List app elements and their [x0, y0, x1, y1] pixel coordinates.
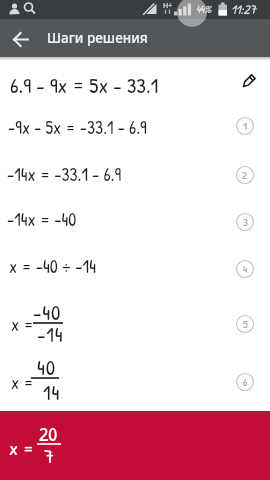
staticText: -14x = -40 — [7, 207, 77, 231]
staticText: 44% — [196, 2, 212, 17]
staticText: H+ — [163, 1, 173, 11]
staticText: -40 — [33, 298, 62, 322]
staticText: x = -40 ÷ -14 — [9, 254, 96, 278]
staticText: x = — [11, 370, 34, 394]
button[interactable] — [6, 24, 36, 54]
staticText: x = — [11, 312, 34, 336]
staticText: 40 — [37, 353, 56, 377]
staticText: 6.9 - 9x = 5x - 33.1 — [10, 71, 159, 95]
staticText: 7 — [44, 442, 54, 466]
staticText: 6 — [243, 375, 248, 390]
staticText: -14x = -33.1 - 6.9 — [7, 162, 122, 186]
button[interactable]: -9x - 5x = -33.1 - 6.9 — [0, 105, 270, 151]
staticText: 1 — [243, 119, 247, 134]
button[interactable]: -14x = -33.1 - 6.9 — [0, 151, 270, 198]
staticText: 11:27 — [231, 0, 256, 18]
staticText: x = — [9, 434, 34, 458]
button[interactable]: -14x = -40 — [0, 198, 270, 245]
staticText: 20 — [39, 420, 58, 444]
button[interactable]: x = — [0, 293, 270, 352]
staticText: -9x - 5x = -33.1 - 6.9 — [8, 115, 147, 139]
button[interactable]: 6.9 - 9x = 5x - 33.1 — [0, 57, 270, 105]
staticText: Шаги решения — [47, 29, 148, 47]
staticText: 4 — [243, 262, 248, 277]
staticText: -14 — [37, 320, 64, 344]
staticText: 14 — [43, 378, 61, 402]
button[interactable]: x = — [0, 352, 270, 411]
staticText: 5 — [243, 317, 248, 332]
button[interactable]: x = — [0, 411, 270, 480]
button[interactable]: x = -40 ÷ -14 — [0, 245, 270, 293]
button[interactable] — [177, 0, 207, 27]
staticText: 3 — [243, 215, 248, 230]
staticText: 2 — [242, 168, 248, 183]
